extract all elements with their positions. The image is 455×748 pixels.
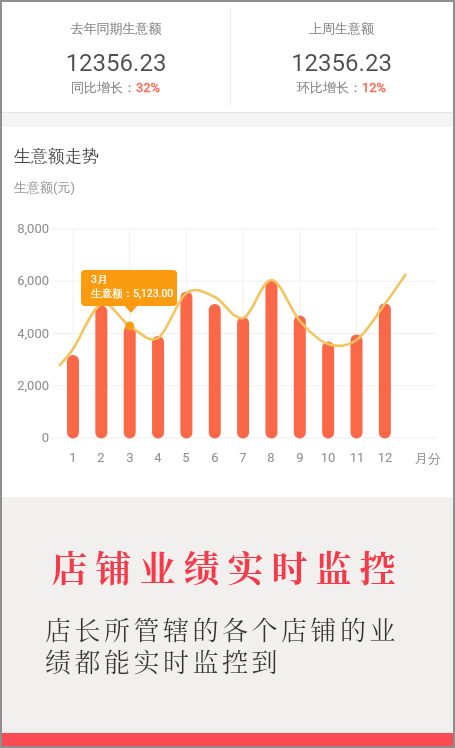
button[interactable]: 去年同期生意额 — [2, 2, 230, 112]
staticText: 7 — [229, 450, 257, 465]
staticText: 3月 — [91, 273, 108, 286]
staticText: 0 — [0, 430, 49, 445]
staticText: 去年同期生意额 — [2, 20, 230, 36]
staticText: 6 — [201, 450, 229, 465]
staticText: 2,000 — [0, 378, 49, 393]
staticText: 生意额：5,123.00 — [91, 287, 174, 300]
staticText: 12356.23 — [230, 49, 453, 77]
staticText: 9 — [286, 450, 314, 465]
staticText: 环比增长： — [297, 79, 362, 95]
staticText: 8,000 — [0, 221, 49, 236]
staticText: 店长所管辖的各个店铺的业 绩都能实时监控到 — [45, 610, 400, 680]
staticText: 32% — [136, 80, 161, 95]
staticText: 4 — [144, 450, 172, 465]
staticText: 10 — [314, 450, 342, 465]
staticText: 同比增长： — [71, 79, 136, 95]
staticText: 1 — [59, 450, 87, 465]
button[interactable]: 店铺业绩实时监控 — [0, 541, 455, 593]
staticText: 3 — [116, 450, 144, 465]
staticText: 月分 — [415, 450, 441, 466]
staticText: 11 — [343, 450, 371, 465]
staticText: 4,000 — [0, 326, 49, 341]
staticText: 8 — [257, 450, 285, 465]
staticText: 生意额(元) — [14, 179, 75, 195]
staticText: 12356.23 — [2, 49, 230, 77]
staticText: 6,000 — [0, 273, 49, 288]
staticText: 5 — [172, 450, 200, 465]
staticText: 12% — [362, 80, 387, 95]
staticText: 生意额走势 — [14, 146, 99, 167]
button[interactable]: 上周生意额 — [230, 2, 453, 112]
staticText: 2 — [87, 450, 115, 465]
staticText: 上周生意额 — [230, 20, 453, 36]
staticText: 12 — [371, 450, 399, 465]
